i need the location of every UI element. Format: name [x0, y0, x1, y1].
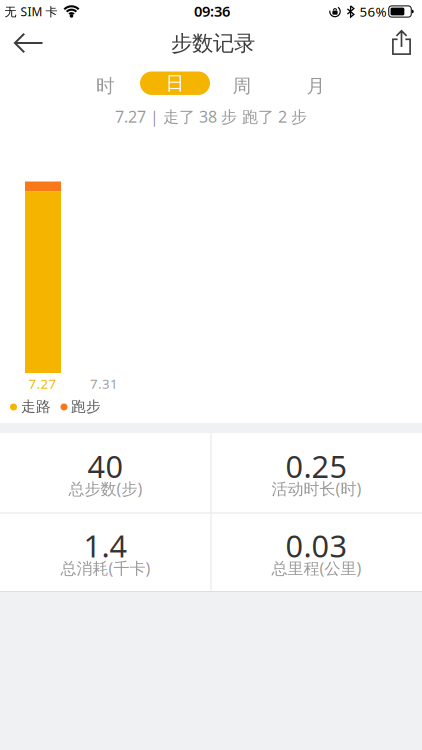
staticText: 7.27 [28, 375, 56, 392]
staticText: 无 SIM 卡 [4, 3, 57, 19]
button[interactable]: 时 [77, 72, 133, 100]
staticText: 时 [96, 74, 115, 97]
staticText: 跑步 [71, 397, 101, 415]
staticText: 40 [87, 446, 123, 486]
button[interactable]: 周 [214, 72, 270, 100]
staticText: 活动时长(时) [271, 478, 361, 499]
staticText: 09:36 [194, 1, 230, 21]
staticText: 月 [306, 74, 325, 97]
staticText: 日 [165, 72, 184, 95]
staticText: 56% [359, 3, 386, 20]
staticText: 走路 [21, 397, 51, 415]
button[interactable]: Back [7, 23, 51, 63]
staticText: 周 [232, 74, 251, 97]
staticText: 0.03 [285, 525, 347, 566]
staticText: 步数记录 [171, 30, 255, 57]
staticText: 总消耗(千卡) [60, 557, 150, 579]
button[interactable]: 月 [288, 72, 344, 100]
staticText: 0.25 [285, 446, 347, 486]
button[interactable]: 日 [140, 71, 210, 95]
staticText: 7.31 [90, 375, 118, 392]
button[interactable]: Share [381, 22, 421, 62]
staticText: 1.4 [83, 525, 127, 566]
staticText: 总步数(步) [68, 478, 142, 499]
staticText: 总里程(公里) [271, 557, 361, 579]
staticText: 7.27 | 走了 38 步 跑了 2 步 [115, 106, 307, 127]
